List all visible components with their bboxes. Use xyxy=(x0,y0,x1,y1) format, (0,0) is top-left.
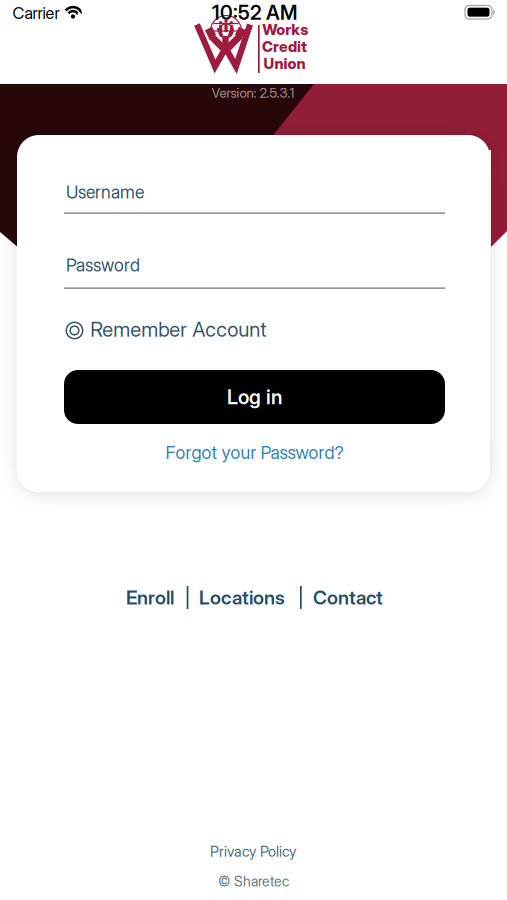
staticText: Version: 2.5.3.1 xyxy=(211,85,294,101)
staticText: Credit xyxy=(262,37,307,56)
staticText: Remember Account xyxy=(90,317,266,342)
staticText: Carrier xyxy=(12,3,59,23)
button[interactable]: Privacy Policy xyxy=(210,843,296,860)
button[interactable]: Username xyxy=(64,184,445,214)
staticText: Union xyxy=(264,54,306,73)
staticText: Locations xyxy=(199,586,285,609)
staticText: Username xyxy=(66,181,144,203)
button[interactable]: Password xyxy=(64,257,445,288)
staticText: Privacy Policy xyxy=(210,843,296,860)
staticText: © Sharetec xyxy=(218,873,289,890)
staticText: Log in xyxy=(227,385,282,409)
staticText: Password xyxy=(66,254,140,276)
staticText: Enroll xyxy=(126,586,174,609)
staticText: Contact xyxy=(313,586,383,609)
button[interactable]: Log in xyxy=(64,370,445,424)
staticText: 10:52 AM xyxy=(212,1,297,24)
button[interactable]: Forgot your Password? xyxy=(165,442,343,463)
button[interactable]: Remember Account xyxy=(64,320,278,341)
button[interactable]: Enroll xyxy=(126,586,174,609)
staticText: Forgot your Password? xyxy=(165,442,343,463)
button[interactable]: Locations xyxy=(199,586,285,609)
button[interactable]: Contact xyxy=(313,586,383,609)
staticText: Works xyxy=(262,20,308,39)
